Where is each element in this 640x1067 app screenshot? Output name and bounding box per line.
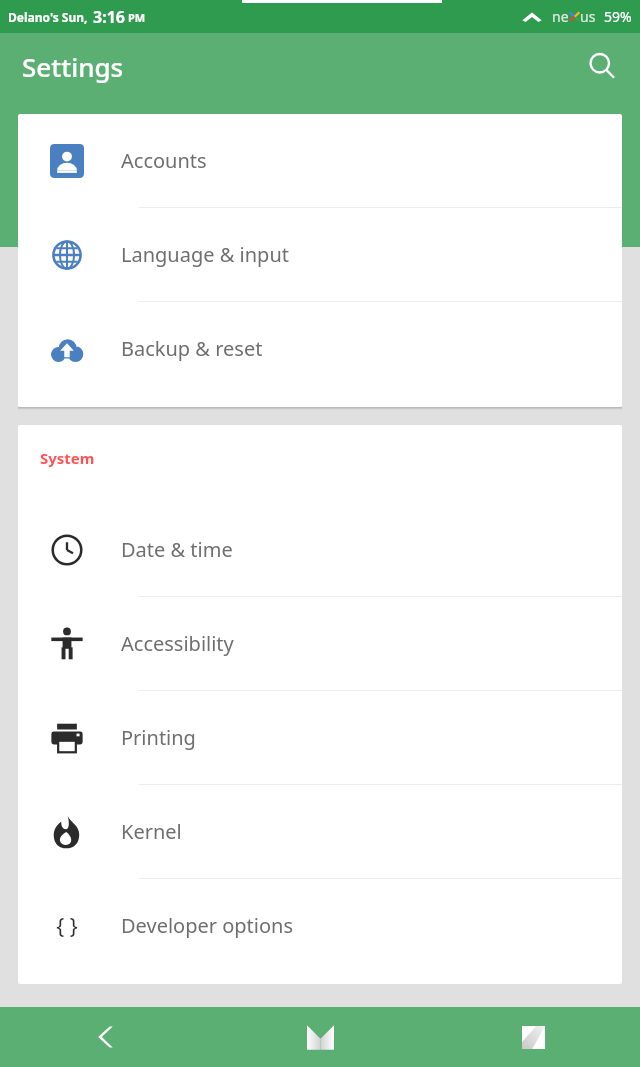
staticText: PM — [128, 10, 146, 25]
button[interactable]: Date & time — [18, 503, 622, 597]
button[interactable]: Kernel — [18, 785, 622, 879]
staticText: us — [580, 7, 596, 26]
staticText: Kernel — [121, 818, 182, 845]
staticText: System — [40, 448, 95, 468]
button[interactable]: Search — [574, 38, 630, 94]
staticText: Backup & reset — [121, 335, 263, 362]
staticText: Settings — [22, 49, 124, 84]
staticText: ne — [552, 7, 569, 26]
button[interactable]: Backup & reset — [18, 302, 622, 407]
button[interactable]: { } — [18, 879, 622, 984]
staticText: 3:16 — [93, 6, 125, 28]
button[interactable]: Back — [0, 1007, 214, 1067]
button[interactable]: Language & input — [18, 208, 622, 302]
button[interactable]: Accessibility — [18, 597, 622, 691]
button[interactable]: Recent apps — [427, 1007, 640, 1067]
staticText: Date & time — [121, 536, 233, 563]
staticText: Accounts — [121, 147, 207, 174]
staticText: Printing — [121, 724, 196, 751]
button[interactable]: Home — [214, 1007, 427, 1067]
staticText: Language & input — [121, 241, 289, 268]
button[interactable]: Accounts — [18, 114, 622, 208]
staticText: Accessibility — [121, 630, 234, 657]
button[interactable]: Printing — [18, 691, 622, 785]
staticText: Delano's Sun, — [8, 9, 88, 25]
staticText: { } — [56, 912, 78, 941]
staticText: Developer options — [121, 912, 294, 939]
staticText: 59% — [604, 7, 632, 26]
